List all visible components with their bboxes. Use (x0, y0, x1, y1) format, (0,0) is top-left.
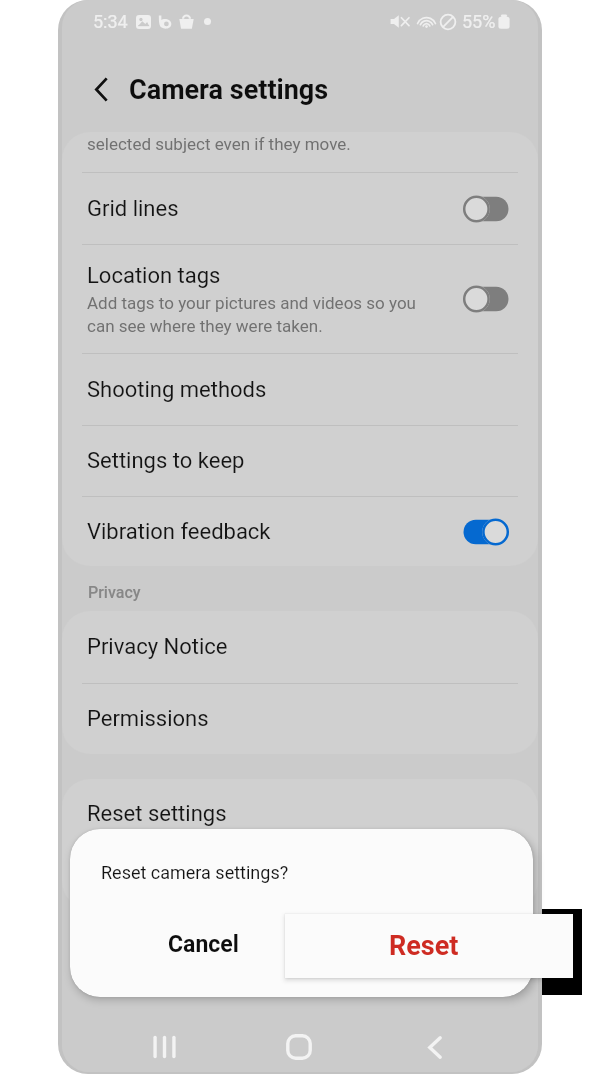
button[interactable]: Reset (285, 914, 573, 978)
button[interactable]: Cancel (136, 916, 271, 972)
button[interactable]: Switch off (463, 285, 509, 313)
staticText: Add tags to your pictures and videos so … (87, 293, 416, 336)
staticText: Privacy (88, 583, 141, 602)
staticText: Shooting methods (87, 377, 267, 403)
staticText: Reset camera settings? (101, 862, 289, 883)
button[interactable]: Grid lines (62, 173, 538, 244)
staticText: Location tags (87, 263, 221, 289)
button[interactable]: Back (75, 63, 127, 115)
button[interactable]: Permissions (62, 684, 538, 754)
button[interactable]: Switch on (463, 518, 509, 546)
staticText: selected subject even if they move. (87, 134, 351, 154)
staticText: Cancel (168, 931, 239, 958)
button[interactable]: Back (413, 1025, 457, 1069)
button[interactable]: Location tags (62, 245, 538, 353)
staticText: Settings to keep (87, 448, 245, 474)
staticText: Grid lines (87, 196, 179, 222)
button[interactable]: Settings to keep (62, 426, 538, 496)
staticText: Privacy Notice (87, 634, 228, 660)
button[interactable]: Privacy Notice (62, 611, 538, 683)
button[interactable]: Home (277, 1025, 321, 1069)
button[interactable]: Reset settings (62, 779, 538, 848)
button[interactable]: Shooting methods (62, 354, 538, 425)
button[interactable]: Switch off (463, 195, 509, 223)
staticText: 55% (462, 11, 496, 32)
staticText: 5:34 (93, 11, 128, 32)
button[interactable]: Vibration feedback (62, 497, 538, 566)
staticText: Reset (389, 930, 459, 962)
button[interactable]: Recent apps (142, 1025, 186, 1069)
staticText: Camera settings (129, 74, 329, 106)
staticText: Vibration feedback (87, 519, 271, 545)
staticText: Permissions (87, 706, 209, 732)
staticText: Reset settings (87, 801, 227, 827)
